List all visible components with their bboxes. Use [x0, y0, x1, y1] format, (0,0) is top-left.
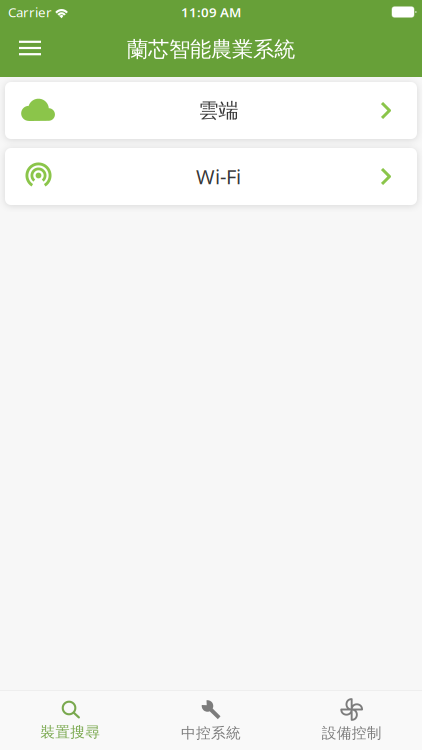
- button[interactable]: Wi-Fi: [5, 148, 417, 205]
- button[interactable]: 中控系統: [141, 691, 281, 750]
- staticText: 中控系統: [181, 724, 241, 742]
- staticText: 11:09 AM: [181, 3, 241, 21]
- button[interactable]: 設備控制: [281, 691, 422, 750]
- staticText: 設備控制: [322, 724, 382, 742]
- staticText: Wi-Fi: [196, 163, 241, 190]
- button[interactable]: 雲端: [5, 82, 417, 139]
- button[interactable]: 裝置搜尋: [0, 691, 141, 750]
- staticText: Carrier: [8, 3, 52, 21]
- button[interactable]: Menu: [8, 26, 52, 73]
- staticText: 裝置搜尋: [40, 723, 100, 741]
- staticText: 蘭芯智能農業系統: [127, 36, 295, 63]
- staticText: 雲端: [198, 98, 238, 123]
